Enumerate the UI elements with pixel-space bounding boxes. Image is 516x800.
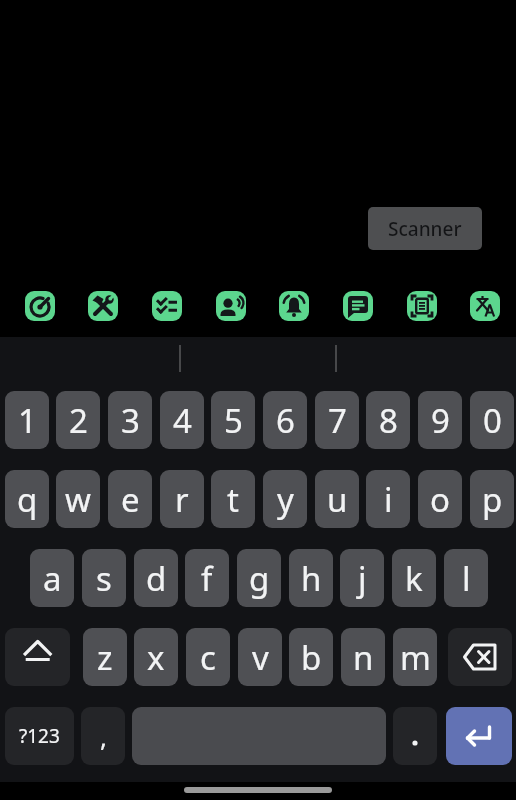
staticText: u xyxy=(327,477,348,522)
staticText: t xyxy=(227,477,239,522)
staticText: a xyxy=(43,556,62,601)
staticText: q xyxy=(17,477,38,522)
button[interactable]: b xyxy=(289,628,333,686)
staticText: x xyxy=(147,635,165,680)
button[interactable]: f xyxy=(185,549,229,607)
staticText: 6 xyxy=(276,398,295,443)
button[interactable]: z xyxy=(83,628,127,686)
staticText: 0 xyxy=(483,398,502,443)
button[interactable]: y xyxy=(263,470,307,528)
button[interactable]: 6 xyxy=(263,391,307,449)
staticText: j xyxy=(358,556,367,601)
staticText: p xyxy=(482,477,503,522)
button[interactable] xyxy=(132,707,386,765)
button[interactable]: v xyxy=(238,628,282,686)
button[interactable]: 0 xyxy=(470,391,514,449)
button[interactable]: u xyxy=(315,470,359,528)
button[interactable]: m xyxy=(393,628,437,686)
button[interactable]: j xyxy=(340,549,384,607)
button[interactable]: g xyxy=(237,549,281,607)
button[interactable] xyxy=(5,628,70,686)
button[interactable]: o xyxy=(418,470,462,528)
staticText: r xyxy=(175,477,189,522)
button[interactable]: q xyxy=(5,470,49,528)
staticText: g xyxy=(249,556,270,601)
staticText: , xyxy=(100,719,107,754)
staticText: i xyxy=(384,477,393,522)
staticText: 3 xyxy=(121,398,140,443)
button[interactable]: w xyxy=(56,470,100,528)
staticText: e xyxy=(121,477,140,522)
button[interactable] xyxy=(407,291,437,321)
button[interactable]: c xyxy=(186,628,230,686)
button[interactable]: e xyxy=(108,470,152,528)
button[interactable]: n xyxy=(341,628,385,686)
button[interactable]: x xyxy=(134,628,178,686)
button[interactable]: h xyxy=(289,549,333,607)
button[interactable]: d xyxy=(134,549,178,607)
button[interactable] xyxy=(25,291,55,321)
button[interactable] xyxy=(88,291,118,321)
staticText: m xyxy=(400,635,431,680)
button[interactable]: k xyxy=(392,549,436,607)
button[interactable] xyxy=(448,628,512,686)
staticText: 8 xyxy=(379,398,398,443)
staticText: z xyxy=(97,635,113,680)
button[interactable] xyxy=(393,707,437,765)
button[interactable]: l xyxy=(444,549,488,607)
button[interactable] xyxy=(279,291,309,321)
button[interactable] xyxy=(470,291,500,321)
staticText: y xyxy=(277,477,294,522)
staticText: w xyxy=(65,477,91,522)
staticText: n xyxy=(353,635,374,680)
button[interactable]: 5 xyxy=(211,391,255,449)
button[interactable] xyxy=(343,291,373,321)
staticText: o xyxy=(430,477,450,522)
button[interactable]: i xyxy=(366,470,410,528)
staticText: 2 xyxy=(69,398,88,443)
button[interactable] xyxy=(152,291,182,321)
staticText: d xyxy=(146,556,167,601)
button[interactable]: 4 xyxy=(160,391,204,449)
button[interactable]: p xyxy=(470,470,514,528)
staticText: f xyxy=(201,556,213,601)
staticText: 7 xyxy=(328,398,347,443)
button[interactable]: t xyxy=(211,470,255,528)
staticText: h xyxy=(301,556,322,601)
staticText: 1 xyxy=(18,398,37,443)
button[interactable] xyxy=(216,291,246,321)
button[interactable]: , xyxy=(81,707,125,765)
staticText: 5 xyxy=(224,398,243,443)
staticText: 4 xyxy=(173,398,192,443)
button[interactable]: r xyxy=(160,470,204,528)
staticText: ?123 xyxy=(19,723,60,749)
staticText: v xyxy=(252,635,269,680)
button[interactable]: 2 xyxy=(56,391,100,449)
button[interactable]: 9 xyxy=(418,391,462,449)
staticText: c xyxy=(200,635,216,680)
button[interactable]: 1 xyxy=(5,391,49,449)
button[interactable]: s xyxy=(82,549,126,607)
button[interactable]: ?123 xyxy=(5,707,74,765)
staticText: s xyxy=(96,556,112,601)
staticText: l xyxy=(462,556,471,601)
button[interactable] xyxy=(446,707,512,765)
button[interactable]: 8 xyxy=(366,391,410,449)
staticText: 9 xyxy=(431,398,450,443)
staticText: Scanner xyxy=(388,216,462,242)
staticText: k xyxy=(405,556,423,601)
button[interactable]: a xyxy=(30,549,74,607)
button[interactable]: 3 xyxy=(108,391,152,449)
staticText: b xyxy=(301,635,322,680)
button[interactable]: 7 xyxy=(315,391,359,449)
